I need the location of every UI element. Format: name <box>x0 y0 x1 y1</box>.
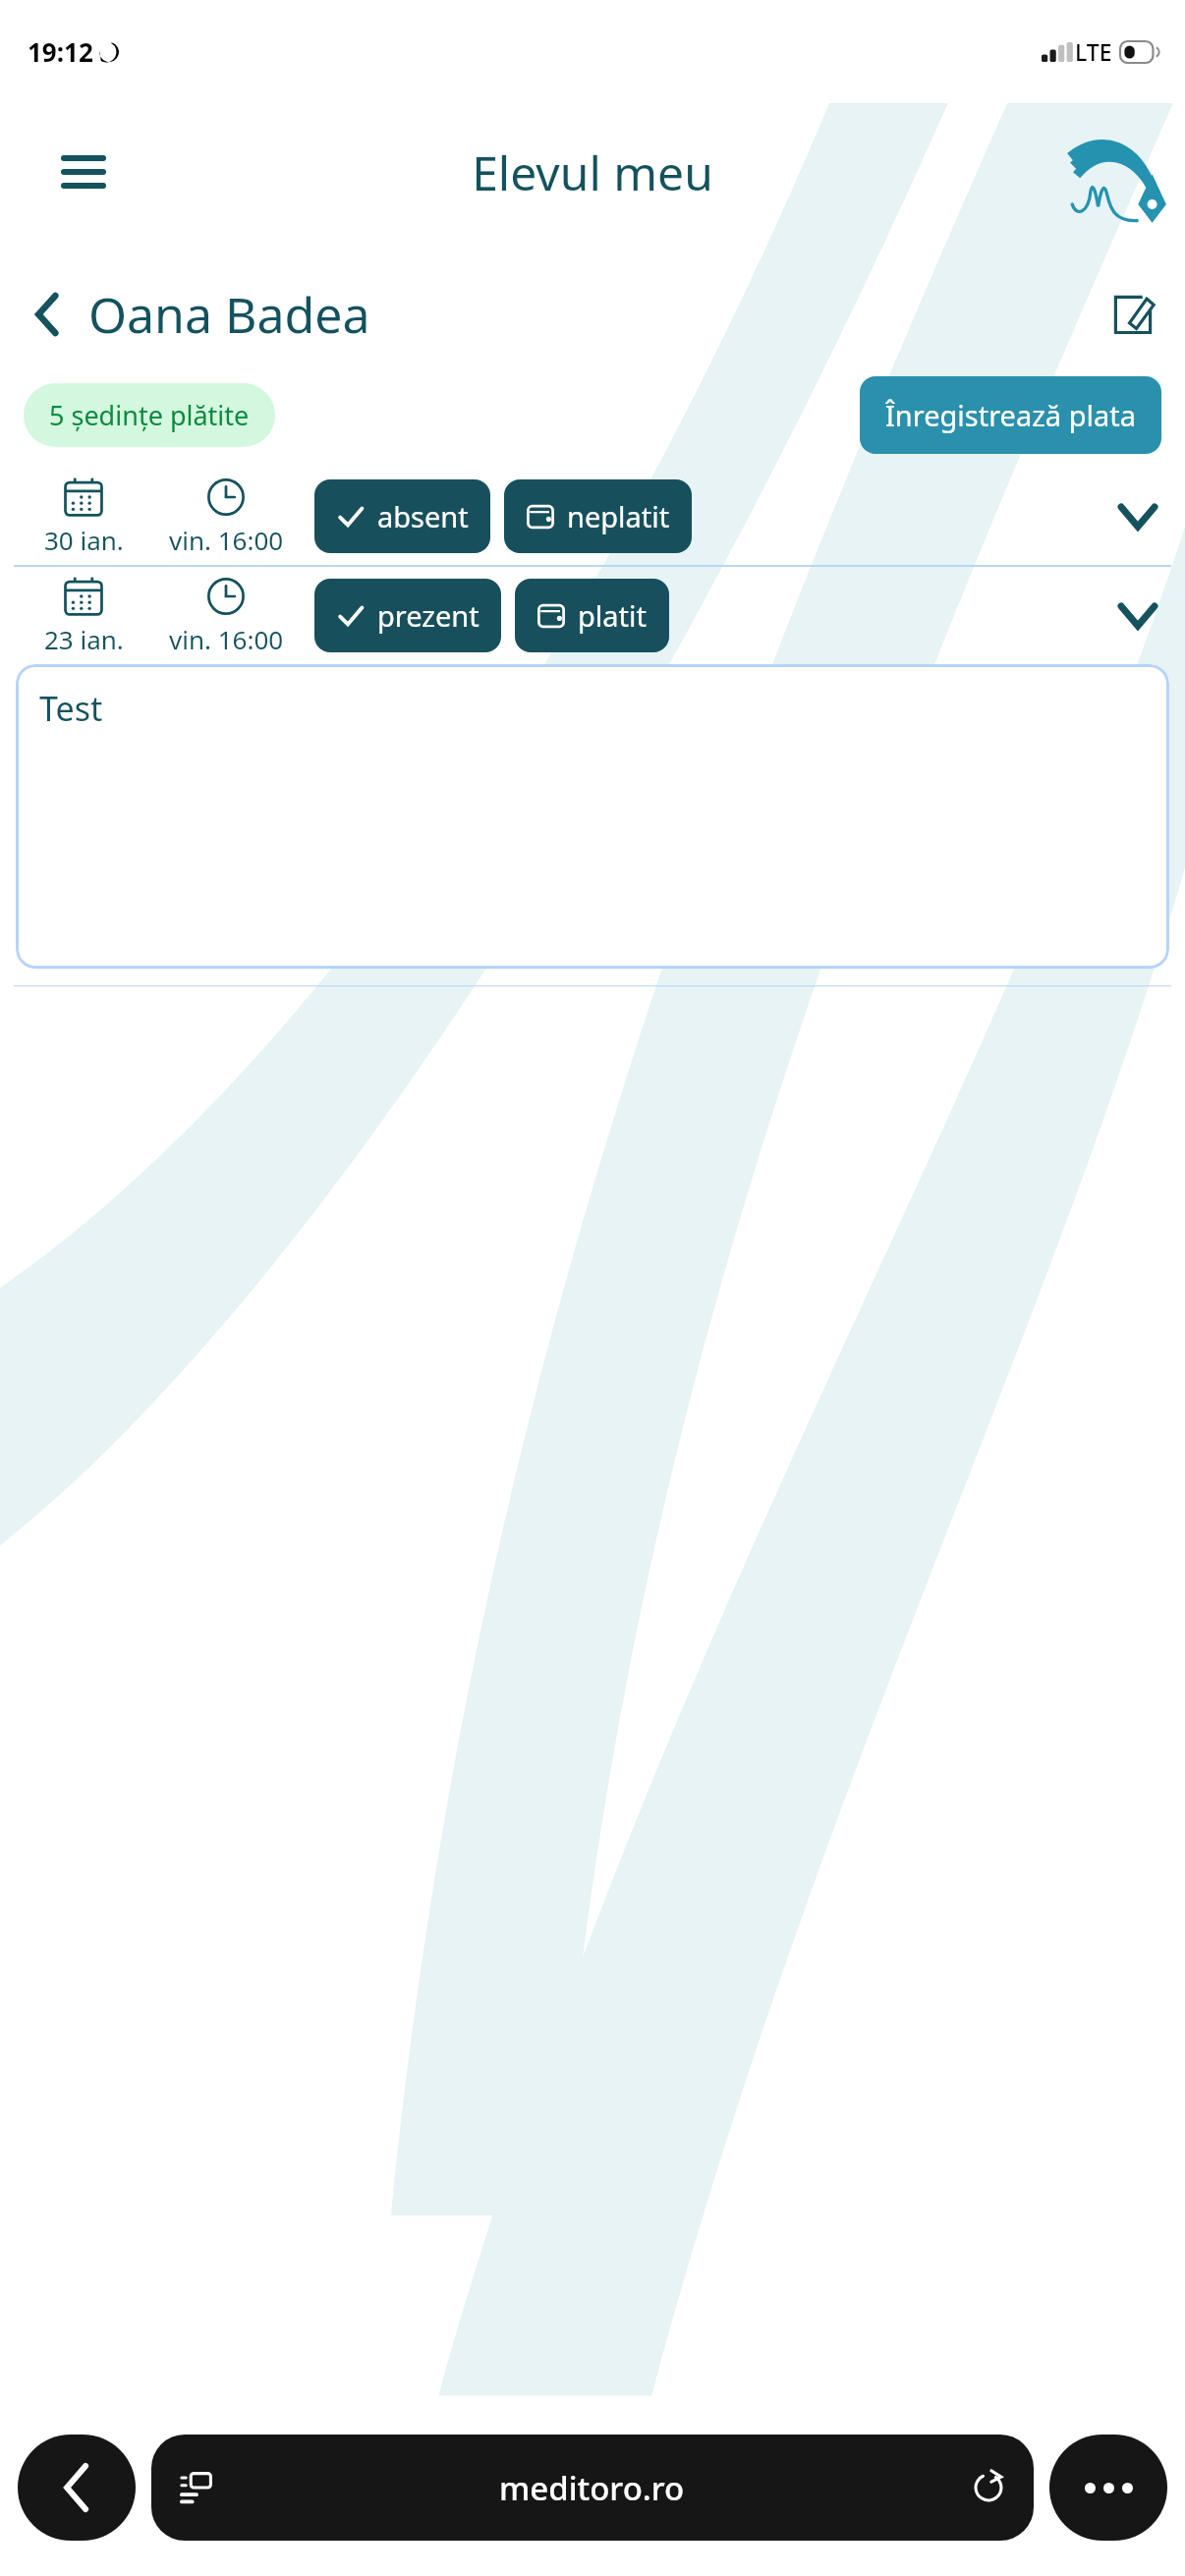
button[interactable]: absent <box>314 479 490 553</box>
button[interactable]: prezent <box>314 579 501 652</box>
button[interactable]: Back <box>18 2435 136 2541</box>
button[interactable]: More options <box>1049 2435 1167 2541</box>
button[interactable]: Test <box>16 664 1169 969</box>
staticText: 23 ian. <box>44 622 124 656</box>
button[interactable]: Edit <box>1100 282 1165 347</box>
staticText: absent <box>377 497 469 535</box>
button[interactable]: Menu <box>55 143 112 200</box>
button[interactable]: 5 ședințe plătite <box>24 383 275 447</box>
staticText: 30 ian. <box>44 523 124 557</box>
staticText: neplatit <box>567 497 670 535</box>
staticText: Test <box>39 686 103 731</box>
staticText: vin. 16:00 <box>169 523 284 557</box>
staticText: Înregistrează plata <box>885 396 1136 434</box>
button[interactable]: 30 ian. <box>20 476 147 557</box>
staticText: vin. 16:00 <box>169 622 284 656</box>
button[interactable]: platit <box>515 579 669 652</box>
staticText: meditoro.ro <box>499 2466 685 2510</box>
button[interactable]: 23 ian. <box>20 575 147 656</box>
button[interactable]: Back <box>20 287 75 342</box>
button[interactable]: vin. 16:00 <box>147 575 305 656</box>
staticText: 5 ședințe plătite <box>49 397 250 433</box>
other: Reload <box>971 2470 1006 2505</box>
staticText: platit <box>578 596 648 635</box>
button[interactable]: meditoro.ro <box>151 2435 1034 2541</box>
button[interactable]: Expand <box>1110 489 1165 544</box>
staticText: 19:12 <box>28 34 93 69</box>
button[interactable]: Înregistrează plata <box>860 376 1161 454</box>
button[interactable]: Expand <box>1110 588 1165 644</box>
button[interactable]: vin. 16:00 <box>147 476 305 557</box>
button[interactable]: neplatit <box>504 479 692 553</box>
staticText: Elevul meu <box>472 140 713 204</box>
staticText: LTE <box>1075 36 1112 67</box>
staticText: prezent <box>377 596 480 635</box>
staticText: Oana Badea <box>88 281 370 348</box>
